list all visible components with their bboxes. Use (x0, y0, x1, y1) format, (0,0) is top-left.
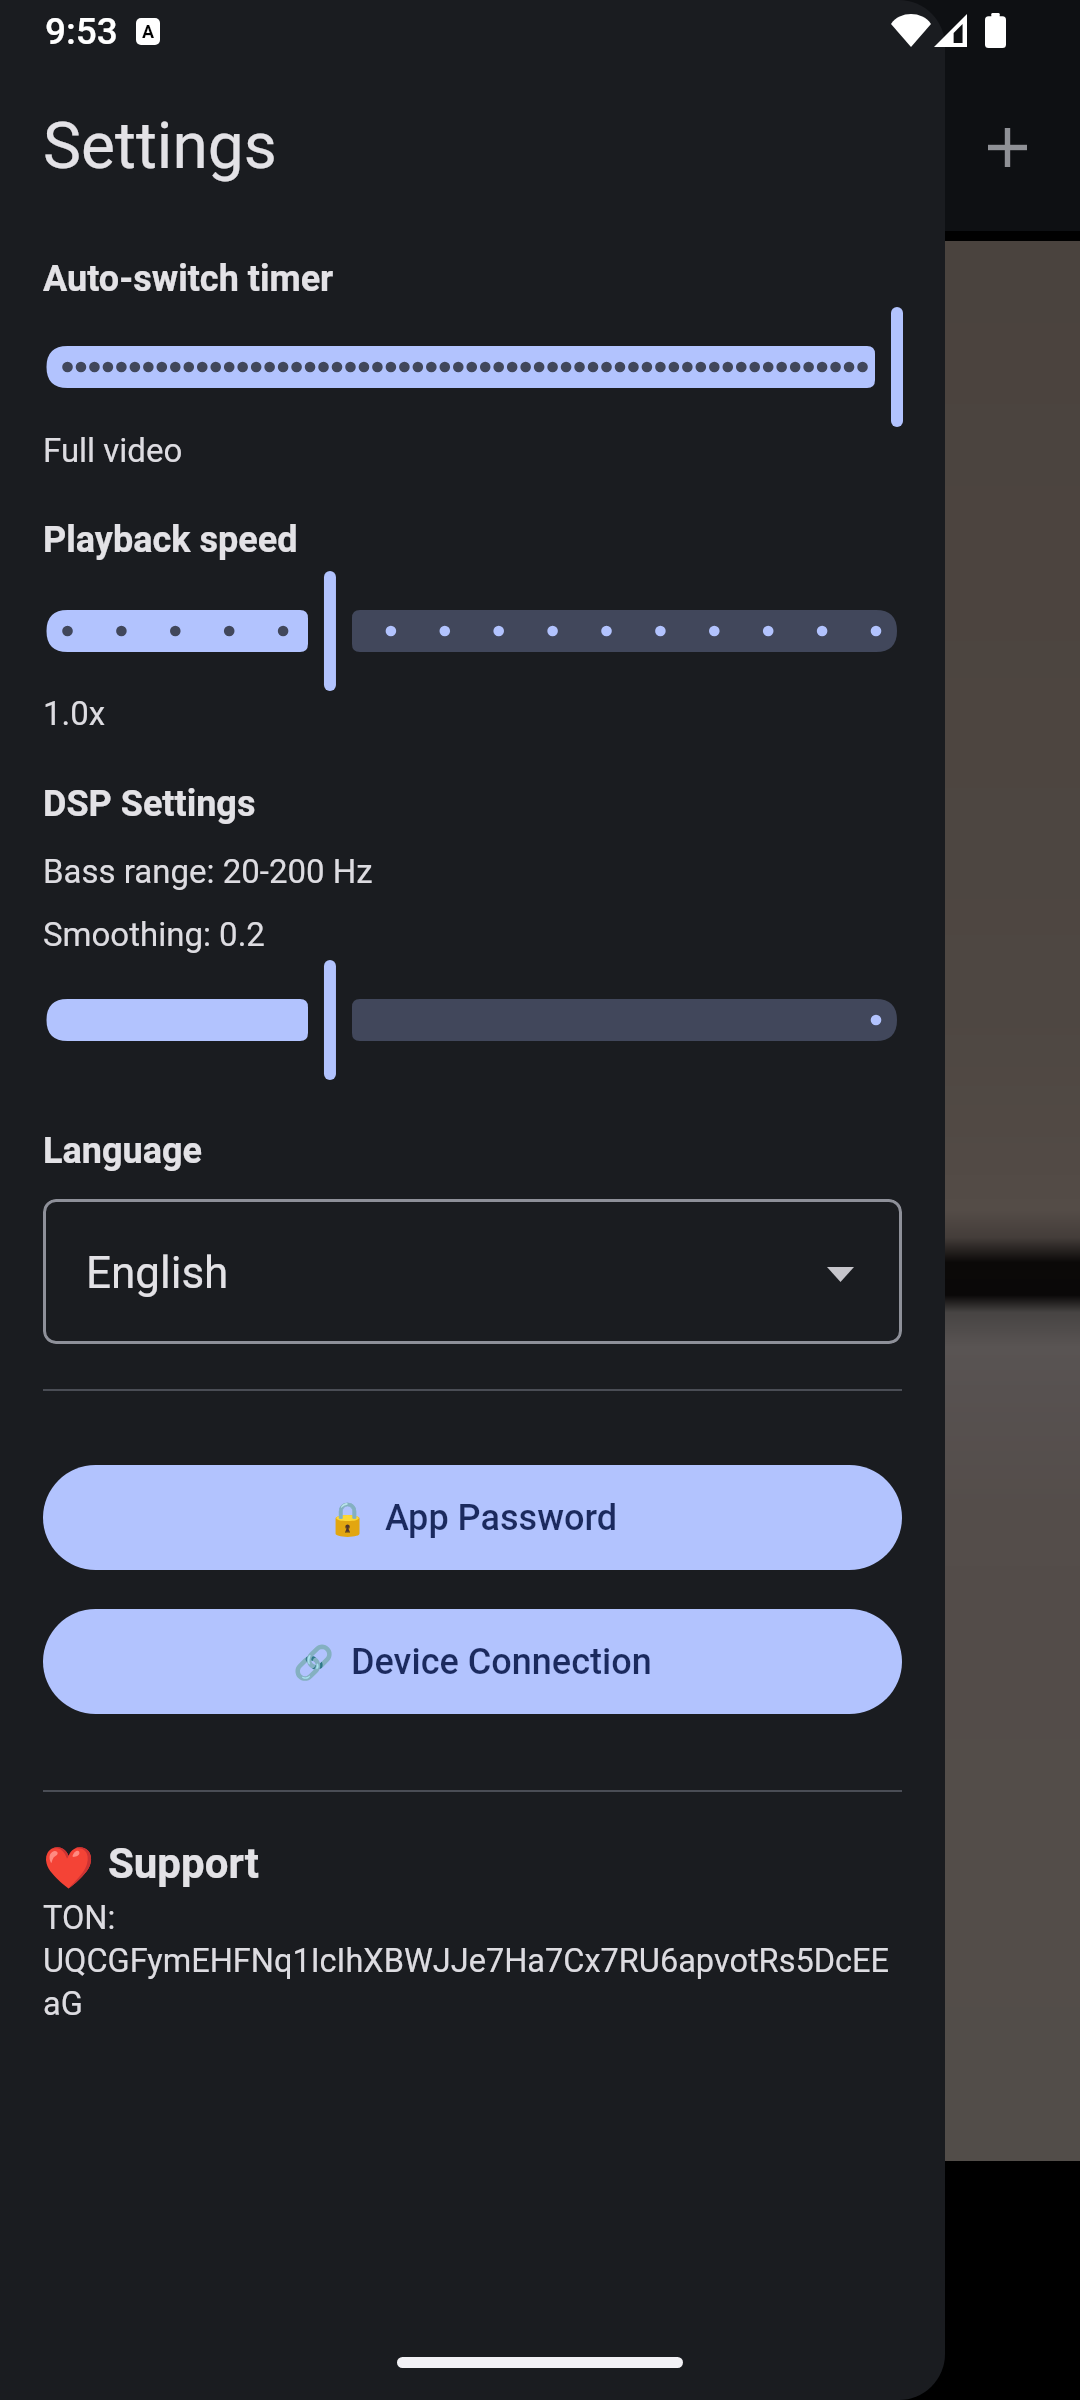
staticText: Smoothing: 0.2 (43, 915, 265, 954)
staticText: App Password (385, 1497, 618, 1539)
staticText: Bass range: 20-200 Hz (43, 852, 373, 891)
staticText: 1.0x (43, 694, 106, 733)
staticText: Playback speed (43, 519, 298, 561)
button[interactable] (0, 960, 945, 1080)
staticText: 🔗 (293, 1643, 335, 1682)
button[interactable] (0, 307, 945, 427)
staticText: Settings (43, 109, 277, 184)
staticText: 9:53 (45, 10, 118, 53)
staticText: TON: UQCGFymEHFNq1IcIhXBWJJe7Ha7Cx7RU6ap… (43, 1899, 895, 2023)
button[interactable]: 🔗 (43, 1609, 902, 1714)
staticText: English (86, 1247, 229, 1299)
staticText: Device Connection (351, 1641, 652, 1683)
button[interactable]: Add (967, 107, 1047, 187)
button[interactable]: English (43, 1199, 902, 1344)
staticText: 🔒 (327, 1499, 369, 1538)
staticText: Language (43, 1130, 203, 1172)
button[interactable] (0, 571, 945, 691)
staticText: A (142, 21, 155, 42)
staticText: Full video (43, 431, 183, 470)
staticText: Auto-switch timer (43, 258, 334, 300)
button[interactable]: 🔒 (43, 1465, 902, 1570)
staticText: ❤️ (43, 1844, 95, 1892)
staticText: Support (108, 1839, 259, 1888)
staticText: DSP Settings (43, 783, 256, 825)
